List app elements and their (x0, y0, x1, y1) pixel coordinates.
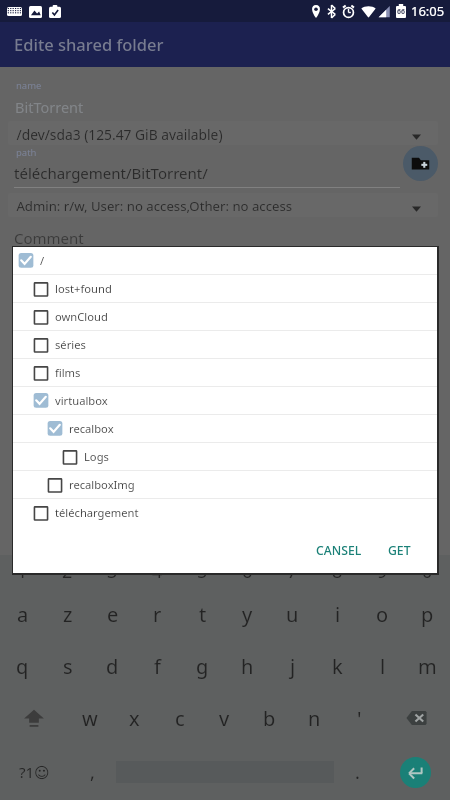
staticText: y (242, 601, 253, 628)
button[interactable]: téléchargement (13, 499, 437, 526)
button[interactable]: j (270, 640, 315, 692)
staticText: k (332, 653, 343, 680)
button[interactable] (8, 121, 438, 145)
button[interactable]: c (157, 692, 202, 744)
button[interactable]: 1 (0, 555, 45, 588)
button[interactable]: b (247, 692, 292, 744)
button[interactable]: o (360, 588, 405, 640)
button[interactable]: p (405, 588, 450, 640)
staticText: i (335, 601, 341, 628)
staticText: 7 (287, 559, 298, 584)
staticText: t (199, 601, 207, 628)
staticText: virtualbox (55, 393, 108, 408)
button[interactable]: GET (380, 536, 419, 565)
button[interactable]: 7 (270, 555, 315, 588)
staticText: 9 (377, 559, 388, 584)
button[interactable]: y (225, 588, 270, 640)
button[interactable]: Backspace (382, 692, 450, 744)
staticText: x (129, 705, 140, 732)
button[interactable]: 0 (405, 555, 450, 588)
button[interactable]: s (45, 640, 90, 692)
staticText: name (16, 79, 42, 92)
staticText: m (418, 653, 437, 680)
staticText: z (63, 601, 73, 628)
staticText: ' (357, 705, 362, 732)
button[interactable]: 4 (135, 555, 180, 588)
button[interactable]: Logs (13, 443, 437, 470)
staticText: . (355, 760, 360, 785)
button[interactable]: t (180, 588, 225, 640)
button[interactable]: e (90, 588, 135, 640)
button[interactable]: v (202, 692, 247, 744)
button[interactable]: u (270, 588, 315, 640)
button[interactable]: h (225, 640, 270, 692)
button[interactable]: Space (116, 744, 334, 800)
staticText: 6 (242, 559, 253, 584)
button[interactable]: Enter (381, 744, 450, 800)
button[interactable]: séries (13, 331, 437, 358)
button[interactable]: 3 (90, 555, 135, 588)
button[interactable]: i (315, 588, 360, 640)
button[interactable]: z (45, 588, 90, 640)
staticText: films (55, 365, 81, 380)
staticText: 16:05 (411, 2, 445, 20)
staticText: Edite shared folder (14, 33, 164, 55)
button[interactable]: CANSEL (308, 536, 370, 565)
staticText: lost+found (55, 281, 112, 296)
button[interactable]: k (315, 640, 360, 692)
button[interactable]: g (180, 640, 225, 692)
button[interactable]: d (90, 640, 135, 692)
button[interactable]: 8 (315, 555, 360, 588)
button[interactable]: f (135, 640, 180, 692)
button[interactable]: 5 (180, 555, 225, 588)
staticText: / (40, 253, 45, 268)
button[interactable]: / (13, 247, 437, 274)
button[interactable]: a (0, 588, 45, 640)
button[interactable] (8, 193, 438, 217)
staticText: 4 (152, 559, 163, 584)
button[interactable]: Create folder (403, 146, 438, 181)
staticText: 2 (62, 559, 73, 584)
button[interactable]: w (67, 692, 112, 744)
staticText: j (290, 653, 296, 680)
staticText: Admin: r/w, User: no access,Other: no ac… (13, 197, 293, 215)
staticText: téléchargement (55, 505, 139, 520)
staticText: 5 (197, 559, 208, 584)
button[interactable]: ownCloud (13, 303, 437, 330)
button[interactable]: q (0, 640, 45, 692)
button[interactable]: Shift (0, 692, 67, 744)
button[interactable]: 6 (225, 555, 270, 588)
staticText: Logs (84, 449, 109, 464)
button[interactable]: r (135, 588, 180, 640)
staticText: a (17, 601, 29, 628)
button[interactable]: lost+found (13, 275, 437, 302)
button[interactable]: l (360, 640, 405, 692)
staticText: e (107, 601, 119, 628)
staticText: s (63, 653, 73, 680)
button[interactable]: n (292, 692, 337, 744)
staticText: ownCloud (55, 309, 108, 324)
button[interactable]: 9 (360, 555, 405, 588)
staticText: /dev/sda3 (125.47 GiB available) (13, 125, 223, 144)
button[interactable]: 2 (45, 555, 90, 588)
staticText: p (421, 601, 434, 628)
button[interactable]: recalbox (13, 415, 437, 442)
button[interactable]: ?1☺ (0, 744, 69, 800)
button[interactable]: films (13, 359, 437, 386)
staticText: recalbox (69, 421, 114, 436)
staticText: f (154, 653, 161, 680)
button[interactable]: recalboxImg (13, 471, 437, 498)
staticText: l (380, 653, 386, 680)
staticText: Comment (14, 228, 84, 248)
staticText: , (90, 760, 95, 785)
staticText: 8 (332, 559, 343, 584)
staticText: v (219, 705, 230, 732)
button[interactable]: m (405, 640, 450, 692)
staticText: 0 (422, 559, 433, 584)
staticText: c (175, 705, 185, 732)
button[interactable]: x (112, 692, 157, 744)
button[interactable]: virtualbox (13, 387, 437, 414)
